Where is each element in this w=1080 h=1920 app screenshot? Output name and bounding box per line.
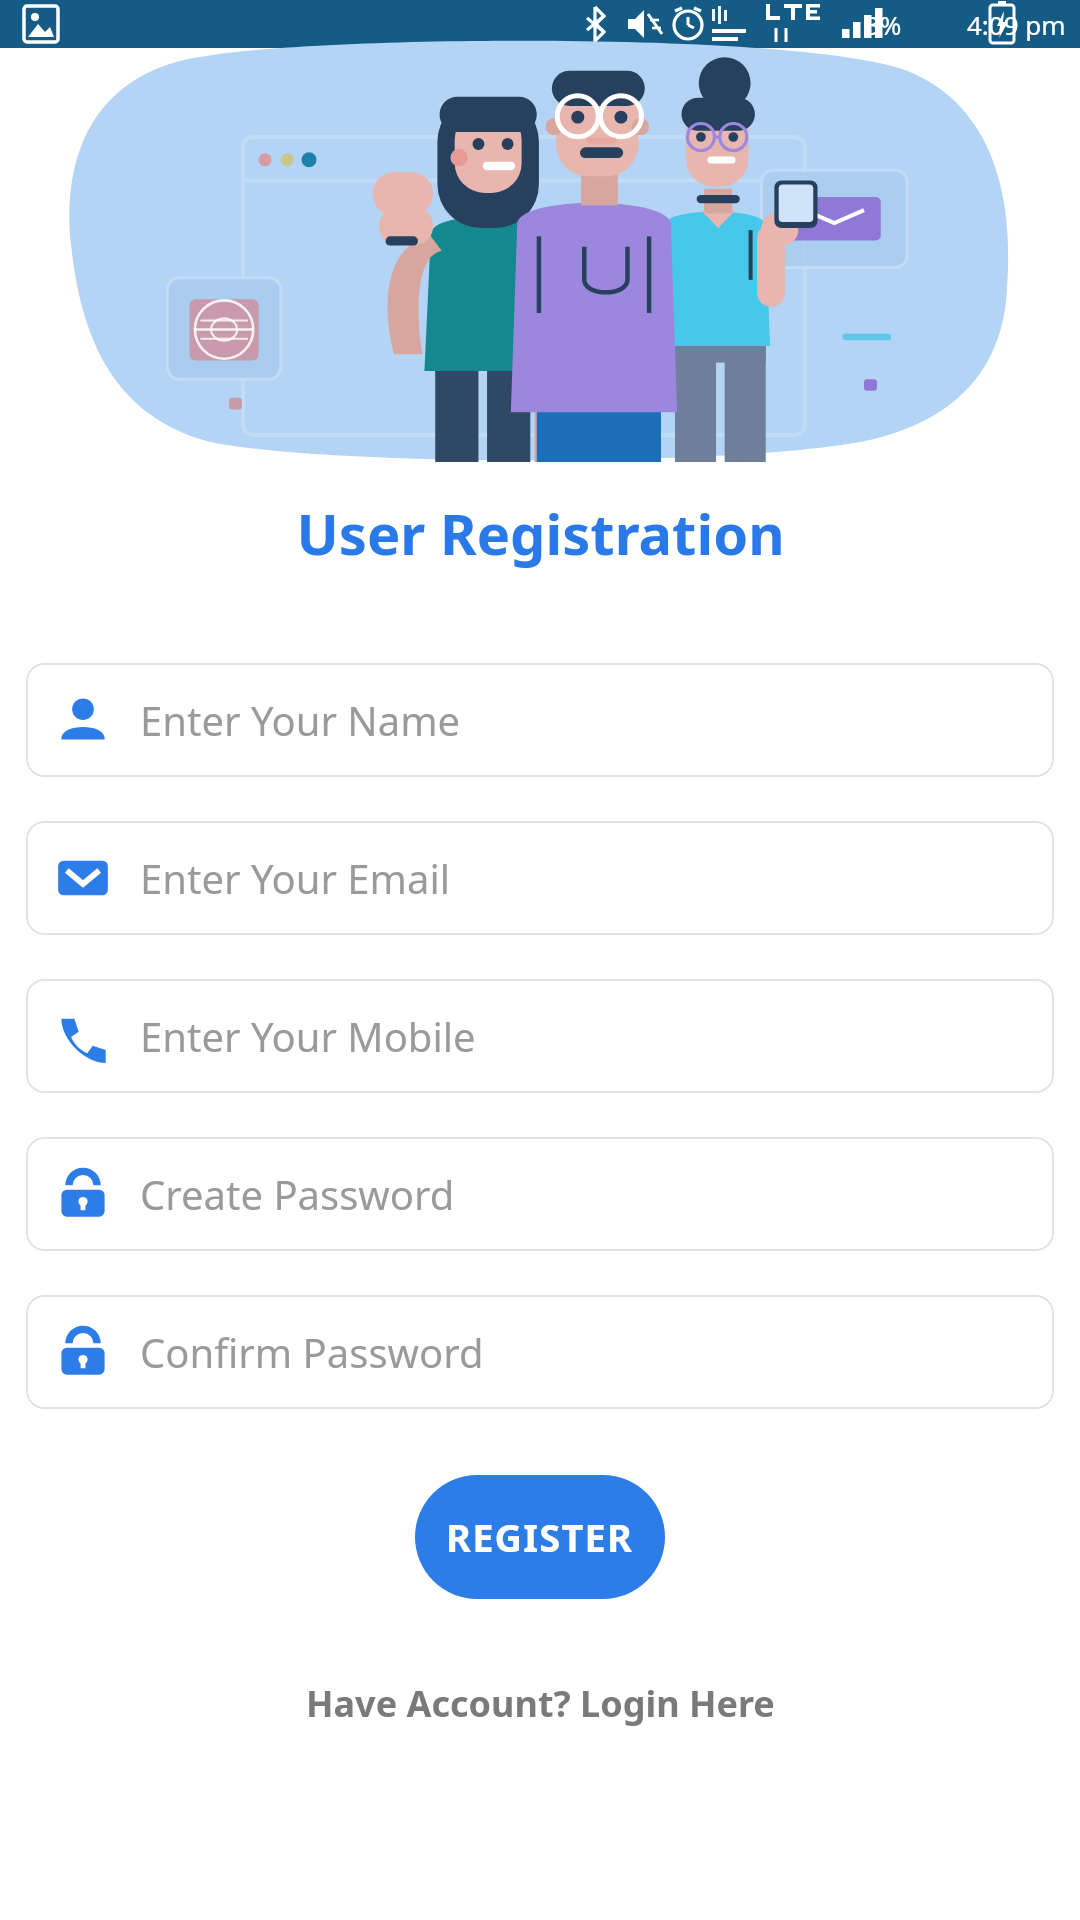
staticText: Have Account? Login Here	[306, 1679, 775, 1728]
button[interactable]: Create Password	[26, 1137, 1054, 1251]
button[interactable]: Enter Your Email	[26, 821, 1054, 935]
staticText: Enter Your Email	[140, 851, 451, 905]
staticText: Enter Your Mobile	[140, 1009, 476, 1063]
staticText: 4:09 pm	[967, 7, 1066, 42]
staticText: Enter Your Name	[140, 693, 461, 747]
button[interactable]: Confirm Password	[26, 1295, 1054, 1409]
staticText: Confirm Password	[140, 1325, 484, 1379]
staticText: User Registration	[296, 495, 785, 571]
button[interactable]: REGISTER	[415, 1475, 665, 1599]
staticText: 3%	[865, 7, 902, 42]
button[interactable]: Enter Your Name	[26, 663, 1054, 777]
staticText: REGISTER	[446, 1511, 634, 1563]
staticText: Create Password	[140, 1167, 455, 1221]
button[interactable]: Enter Your Mobile	[26, 979, 1054, 1093]
button[interactable]: Have Account? Login Here	[290, 1671, 791, 1736]
